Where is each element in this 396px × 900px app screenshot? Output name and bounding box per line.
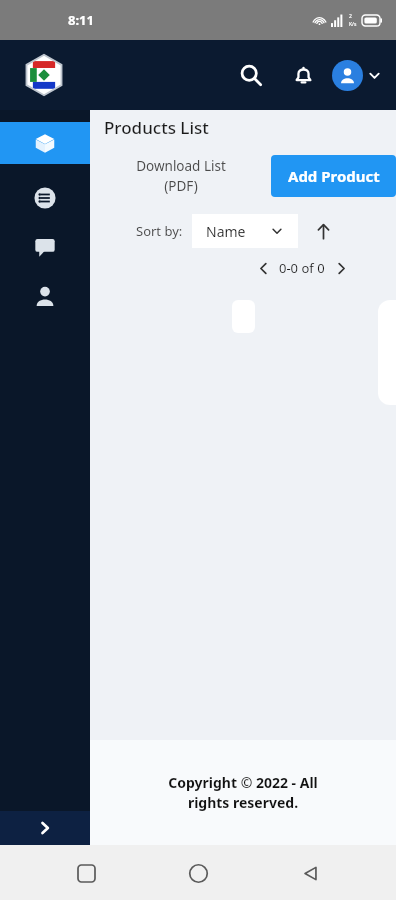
button[interactable]: Name (192, 214, 298, 248)
staticText: Sort by: (136, 222, 183, 240)
staticText: Download List (PDF) (136, 157, 226, 195)
button[interactable]: Notifications (281, 53, 325, 97)
button[interactable]: Recent apps (60, 847, 112, 899)
staticText: 8:11 (68, 11, 94, 29)
staticText: Name (206, 222, 246, 241)
button[interactable]: Search (229, 53, 273, 97)
button[interactable]: Download List (PDF) (90, 157, 271, 195)
button[interactable]: Previous page (252, 257, 274, 279)
button[interactable]: Messages (0, 226, 90, 268)
button[interactable]: Home (172, 847, 224, 899)
staticText: 0-0 of 0 (279, 259, 325, 277)
staticText: Add Product (288, 166, 380, 186)
button[interactable]: Sort ascending (310, 218, 336, 244)
button[interactable]: Back (284, 847, 336, 899)
staticText: Copyright © 2022 - All rights reserved. (168, 773, 318, 812)
button[interactable]: Add Product (271, 155, 396, 197)
button[interactable]: Orders (0, 177, 90, 219)
button[interactable]: Profile (0, 275, 90, 317)
button[interactable]: App logo (22, 53, 66, 97)
button[interactable]: Account (332, 60, 386, 91)
button[interactable]: Expand menu (0, 811, 90, 845)
button[interactable]: Next page (330, 257, 352, 279)
button[interactable]: Products (0, 122, 90, 164)
staticText: Products List (104, 116, 209, 139)
staticText: 2 K/s (349, 13, 357, 27)
